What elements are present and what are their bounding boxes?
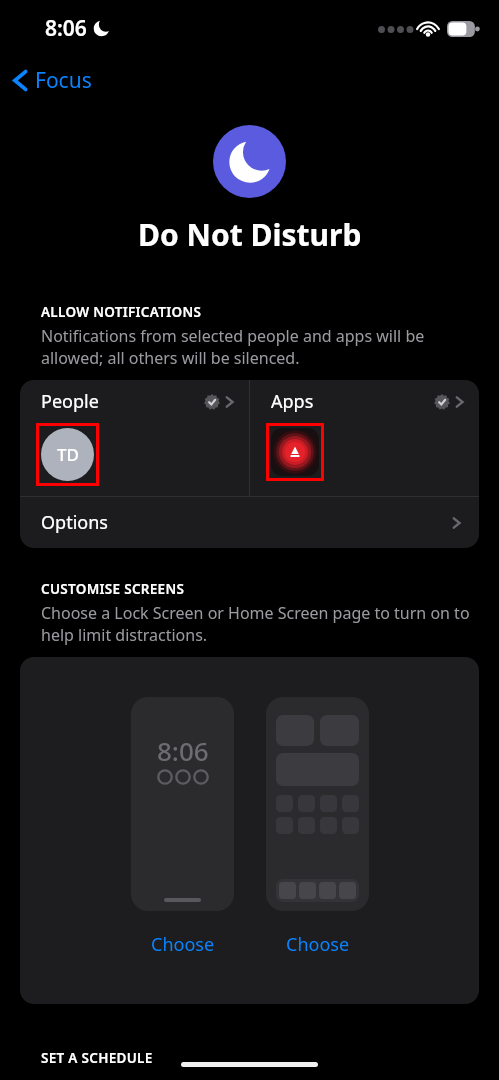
- staticText: ALLOW NOTIFICATIONS: [41, 303, 202, 321]
- staticText: 8:06: [45, 14, 87, 43]
- staticText: Choose: [151, 932, 215, 957]
- staticText: CUSTOMISE SCREENS: [41, 580, 185, 598]
- staticText: Choose a Lock Screen or Home Screen page…: [41, 602, 470, 646]
- button[interactable]: Choose: [276, 929, 360, 960]
- staticText: SET A SCHEDULE: [41, 1049, 153, 1067]
- staticText: Notifications from selected people and a…: [41, 325, 425, 369]
- staticText: People: [41, 389, 99, 414]
- button[interactable]: Options: [20, 497, 479, 548]
- staticText: Apps: [271, 389, 314, 414]
- staticText: Do Not Disturb: [138, 214, 362, 255]
- staticText: Choose: [286, 932, 350, 957]
- staticText: 8:06: [157, 733, 209, 768]
- other: Back: [12, 67, 29, 94]
- button[interactable]: Choose: [141, 929, 225, 960]
- button[interactable]: Apps: [250, 380, 479, 496]
- button[interactable]: Back: [0, 57, 499, 103]
- staticText: Options: [41, 510, 108, 535]
- staticText: Focus: [35, 66, 92, 95]
- button[interactable]: People: [20, 380, 249, 496]
- staticText: TD: [57, 443, 79, 466]
